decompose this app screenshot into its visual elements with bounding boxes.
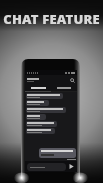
button[interactable] (25, 84, 51, 91)
button[interactable] (26, 93, 63, 99)
button[interactable] (26, 114, 46, 120)
staticText: CHAT FEATURE (0, 10, 103, 28)
button[interactable] (26, 107, 66, 113)
button[interactable] (26, 121, 57, 127)
button[interactable] (39, 148, 76, 158)
button[interactable]: Send (68, 163, 75, 170)
button[interactable] (27, 163, 66, 171)
button[interactable] (26, 100, 49, 106)
button[interactable]: Search (69, 77, 75, 83)
button[interactable] (26, 128, 55, 134)
button[interactable] (51, 84, 77, 91)
